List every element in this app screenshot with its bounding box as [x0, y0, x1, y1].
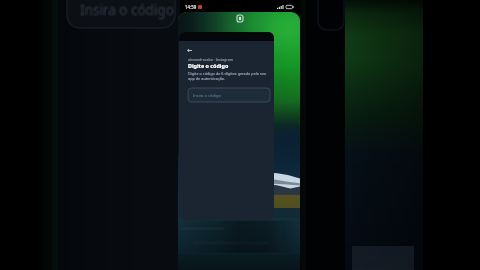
- button[interactable]: Voltar: [179, 32, 274, 220]
- button[interactable]: Voltar: [185, 46, 194, 55]
- staticText: Insira o código: [81, 2, 175, 20]
- staticText: Digite o código de 6 dígitos gerado pelo…: [188, 71, 271, 81]
- staticText: Insira o código: [79, 1, 173, 19]
- staticText: 14:59: [185, 4, 197, 10]
- staticText: Insira o código: [79, 2, 173, 20]
- staticText: Insira o código: [193, 93, 221, 98]
- staticText: Insira o código: [80, 2, 174, 20]
- staticText: Insira o código: [80, 0, 174, 18]
- staticText: Insira o código: [81, 1, 175, 19]
- staticText: Insira o código: [81, 0, 175, 18]
- other: App: [237, 15, 243, 22]
- staticText: alexandracabo · Instagram: [188, 57, 234, 62]
- staticText: Insira o código: [79, 0, 173, 18]
- button[interactable]: Insira o código: [188, 88, 270, 102]
- staticText: Insira o código: [80, 1, 174, 19]
- staticText: Digite o código: [188, 62, 229, 69]
